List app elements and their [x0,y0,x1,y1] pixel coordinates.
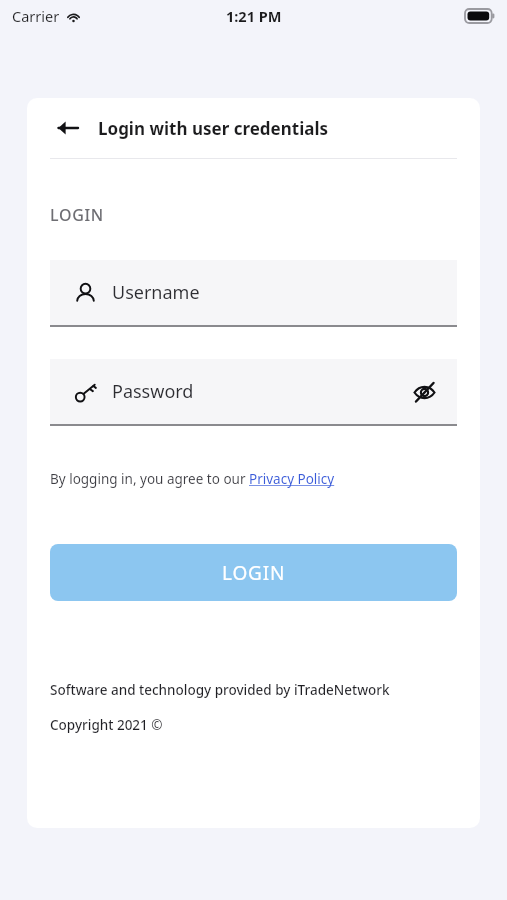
staticText: Username [112,280,200,305]
staticText: Software and technology provided by iTra… [50,681,390,699]
staticText: Copyright 2021 © [50,716,163,734]
button[interactable]: Privacy Policy [249,470,335,488]
staticText: By logging in, you agree to our [50,470,249,488]
staticText: Privacy Policy [249,470,335,488]
staticText: Carrier [12,6,60,26]
button[interactable]: Show password [409,377,439,407]
button[interactable]: Username [50,260,457,327]
button[interactable]: Back [50,110,86,146]
button[interactable]: Password [50,359,457,426]
staticText: LOGIN [222,560,286,586]
staticText: Login with user credentials [98,117,329,140]
button[interactable]: LOGIN [50,544,457,601]
staticText: 1:21 PM [226,6,282,26]
staticText: LOGIN [50,204,104,226]
staticText: Password [112,379,194,404]
